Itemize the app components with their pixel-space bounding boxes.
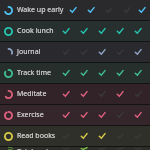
button[interactable]: Progress: [0, 0, 150, 20]
staticText: Meditate: [17, 89, 47, 99]
button[interactable]: Done: [57, 84, 75, 104]
button[interactable]: Done: [93, 42, 111, 62]
button[interactable]: Not done: [93, 147, 111, 150]
button[interactable]: Not done: [129, 84, 147, 104]
button[interactable]: Done: [93, 126, 111, 146]
button[interactable]: Done: [129, 21, 147, 41]
button[interactable]: Not done: [111, 105, 129, 125]
button[interactable]: Progress: [0, 63, 150, 83]
other: Progress: [4, 111, 13, 120]
other: Progress: [4, 6, 13, 15]
button[interactable]: Done: [129, 42, 147, 62]
button[interactable]: Done: [75, 147, 93, 150]
button[interactable]: Done: [93, 63, 111, 83]
button[interactable]: Progress: [0, 21, 150, 41]
button[interactable]: Done: [57, 105, 75, 125]
button[interactable]: Progress: [0, 42, 150, 62]
button[interactable]: Done: [75, 63, 93, 83]
staticText: Track time: [17, 68, 51, 78]
other: Progress: [4, 147, 13, 150]
button[interactable]: Not done: [129, 147, 147, 150]
button[interactable]: Done: [93, 21, 111, 41]
button[interactable]: Done: [136, 0, 147, 20]
button[interactable]: Done: [93, 105, 111, 125]
other: Progress: [4, 90, 13, 99]
button[interactable]: Done: [64, 0, 82, 20]
button[interactable]: Done: [75, 126, 93, 146]
button[interactable]: Done: [57, 21, 75, 41]
button[interactable]: Done: [82, 0, 100, 20]
button[interactable]: Done: [111, 84, 129, 104]
button[interactable]: Progress: [0, 105, 150, 125]
button[interactable]: Done: [111, 63, 129, 83]
button[interactable]: Progress: [0, 147, 150, 150]
button[interactable]: Done: [129, 105, 147, 125]
other: Progress: [4, 69, 13, 78]
other: Progress: [4, 27, 13, 36]
button[interactable]: Done: [129, 63, 147, 83]
staticText: Exercise: [17, 110, 44, 120]
button[interactable]: Done: [111, 21, 129, 41]
staticText: Wake up early: [17, 5, 64, 15]
button[interactable]: Done: [75, 21, 93, 41]
staticText: Drink water: [17, 147, 56, 150]
button[interactable]: Progress: [0, 84, 150, 104]
button[interactable]: Not done: [111, 147, 129, 150]
staticText: Journal: [17, 47, 41, 57]
button[interactable]: Done: [75, 105, 93, 125]
button[interactable]: Done: [75, 84, 93, 104]
button[interactable]: Progress: [0, 126, 150, 146]
button[interactable]: Not done: [93, 84, 111, 104]
staticText: Cook lunch: [17, 26, 54, 36]
other: Progress: [4, 48, 13, 57]
button[interactable]: Done: [57, 63, 75, 83]
other: Progress: [4, 132, 13, 141]
staticText: Read books: [17, 131, 56, 141]
button[interactable]: Not done: [57, 147, 75, 150]
